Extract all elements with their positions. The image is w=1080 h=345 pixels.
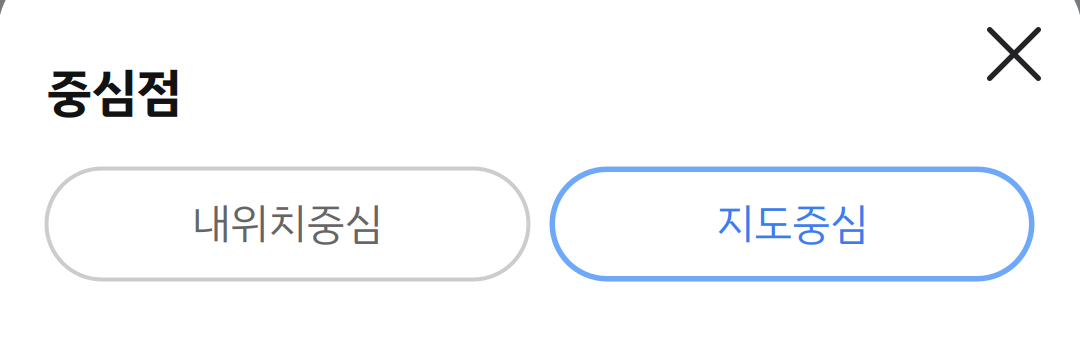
staticText: 내위치중심 (192, 192, 382, 256)
staticText: 중심점 (46, 54, 181, 130)
button[interactable]: 내위치중심 (44, 166, 530, 281)
button[interactable]: 지도중심 (549, 166, 1034, 281)
button[interactable]: Close (966, 6, 1062, 102)
staticText: 지도중심 (716, 192, 868, 256)
